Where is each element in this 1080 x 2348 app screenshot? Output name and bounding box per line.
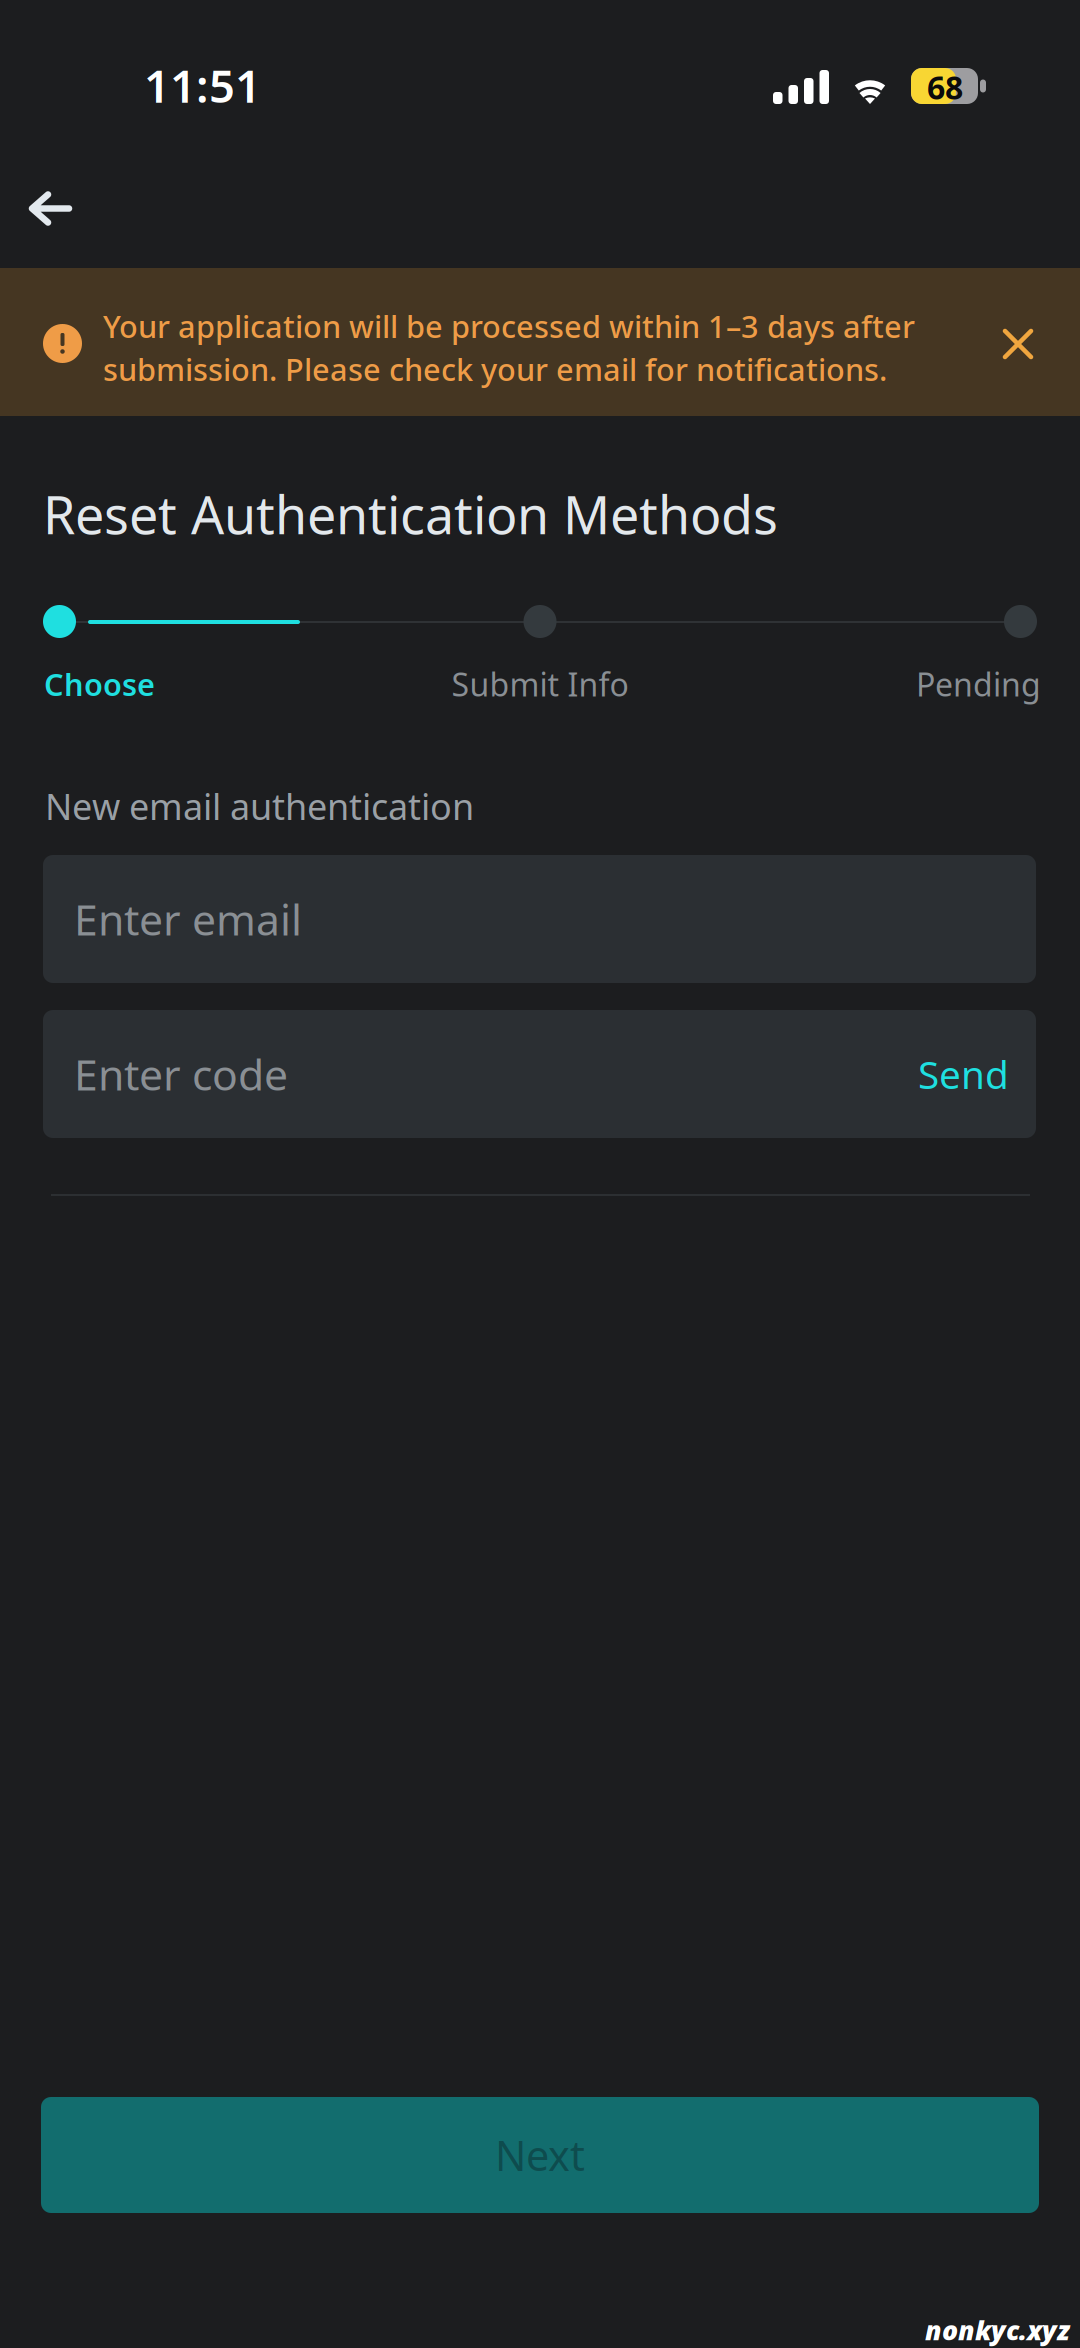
button[interactable]: Enter email bbox=[43, 855, 1036, 983]
staticText: Your application will be processed withi… bbox=[103, 306, 915, 346]
staticText: Send bbox=[918, 1048, 1009, 1100]
button[interactable]: Back bbox=[0, 153, 101, 264]
staticText: 68 bbox=[927, 66, 963, 108]
button[interactable]: Send bbox=[918, 1048, 1009, 1100]
staticText: Next bbox=[495, 2128, 585, 2182]
staticText: submission. Please check your email for … bbox=[103, 349, 887, 389]
staticText: Submit Info bbox=[451, 663, 628, 705]
staticText: nonkyc.xyz bbox=[925, 2312, 1070, 2348]
button[interactable]: Next bbox=[41, 2097, 1039, 2213]
staticText: Choose bbox=[44, 664, 155, 704]
staticText: Enter code bbox=[74, 1046, 288, 1102]
staticText: Enter email bbox=[74, 891, 302, 947]
button[interactable]: Dismiss bbox=[986, 312, 1050, 376]
staticText: Reset Authentication Methods bbox=[43, 479, 778, 549]
staticText: 11:51 bbox=[144, 55, 261, 115]
staticText: Pending bbox=[916, 663, 1041, 705]
staticText: New email authentication bbox=[45, 782, 474, 830]
